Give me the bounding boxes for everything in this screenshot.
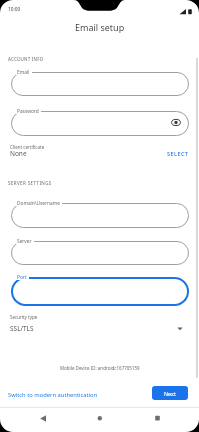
staticText: Next [164, 390, 176, 397]
staticText: Domain\Username [17, 200, 60, 206]
button[interactable] [11, 111, 189, 136]
button[interactable]: SSL/TLS [10, 324, 100, 333]
button[interactable] [142, 408, 172, 432]
button[interactable] [168, 115, 184, 131]
staticText: None [10, 149, 27, 158]
button[interactable] [28, 408, 58, 432]
staticText: Email setup [75, 21, 125, 33]
button[interactable]: Switch to modern authentication [8, 390, 118, 399]
staticText: ACCOUNT INFO [8, 56, 44, 62]
staticText: SELECT [167, 150, 189, 158]
staticText: Password [17, 108, 39, 114]
staticText: SSL/TLS [10, 324, 34, 333]
button[interactable] [11, 241, 189, 265]
staticText: Port [17, 274, 27, 280]
staticText: Email [17, 69, 30, 75]
staticText: Client certificate [10, 144, 45, 150]
staticText: Server [17, 238, 32, 244]
button[interactable] [11, 72, 189, 96]
button[interactable]: SELECT [140, 150, 189, 158]
button[interactable]: Next [152, 386, 188, 400]
staticText: Mobile Device ID: androidc167705159 [60, 365, 140, 371]
staticText: SERVER SETTINGS [8, 180, 52, 186]
button[interactable] [85, 408, 115, 432]
staticText: Security type [10, 314, 38, 320]
staticText: Switch to modern authentication [8, 391, 98, 399]
button[interactable] [11, 203, 189, 228]
staticText: 10:00 [8, 6, 21, 13]
button[interactable] [11, 277, 189, 306]
